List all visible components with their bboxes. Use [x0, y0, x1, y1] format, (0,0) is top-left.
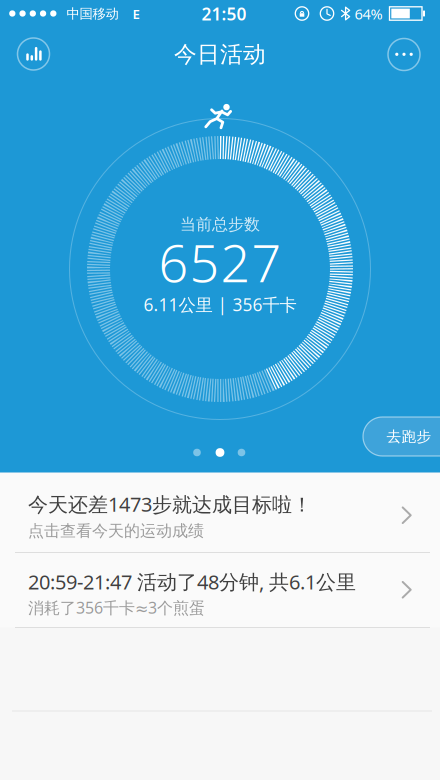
staticText: 点击查看今天的运动成绩: [28, 521, 204, 541]
staticText: 去跑步: [386, 427, 431, 445]
staticText: 当前总步数: [180, 215, 260, 234]
staticText: 今日活动: [174, 41, 266, 68]
staticText: 消耗了356千卡≈3个煎蛋: [28, 597, 205, 618]
staticText: 6527: [158, 227, 281, 297]
staticText: 64%: [354, 4, 382, 24]
button[interactable]: 统计: [17, 38, 49, 70]
staticText: 6.11公里 | 356千卡: [143, 293, 296, 316]
button[interactable]: 今天还差1473步就达成目标啦！: [0, 473, 440, 552]
button[interactable]: 20:59-21:47 活动了48分钟, 共6.1公里: [0, 552, 440, 627]
staticText: 今天还差1473步就达成目标啦！: [28, 491, 312, 517]
staticText: 中国移动: [66, 6, 118, 22]
staticText: 21:50: [201, 2, 246, 25]
staticText: 20:59-21:47 活动了48分钟, 共6.1公里: [28, 568, 356, 595]
button[interactable]: 去跑步: [363, 417, 440, 456]
staticText: E: [132, 5, 139, 23]
button[interactable]: 更多: [388, 38, 420, 70]
